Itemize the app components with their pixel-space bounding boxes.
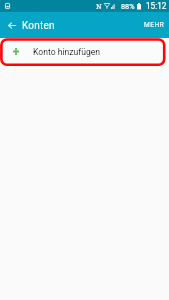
button[interactable]: Zurück <box>0 12 21 38</box>
staticText: Konten <box>22 20 55 32</box>
staticText: Konto hinzufügen <box>33 47 101 57</box>
staticText: 15:12 <box>146 1 167 11</box>
staticText: N <box>96 1 102 11</box>
staticText: 88% <box>121 2 135 11</box>
button[interactable]: Konto hinzufügen <box>0 40 169 64</box>
button[interactable]: MEHR <box>139 12 169 38</box>
staticText: MEHR <box>144 21 165 29</box>
